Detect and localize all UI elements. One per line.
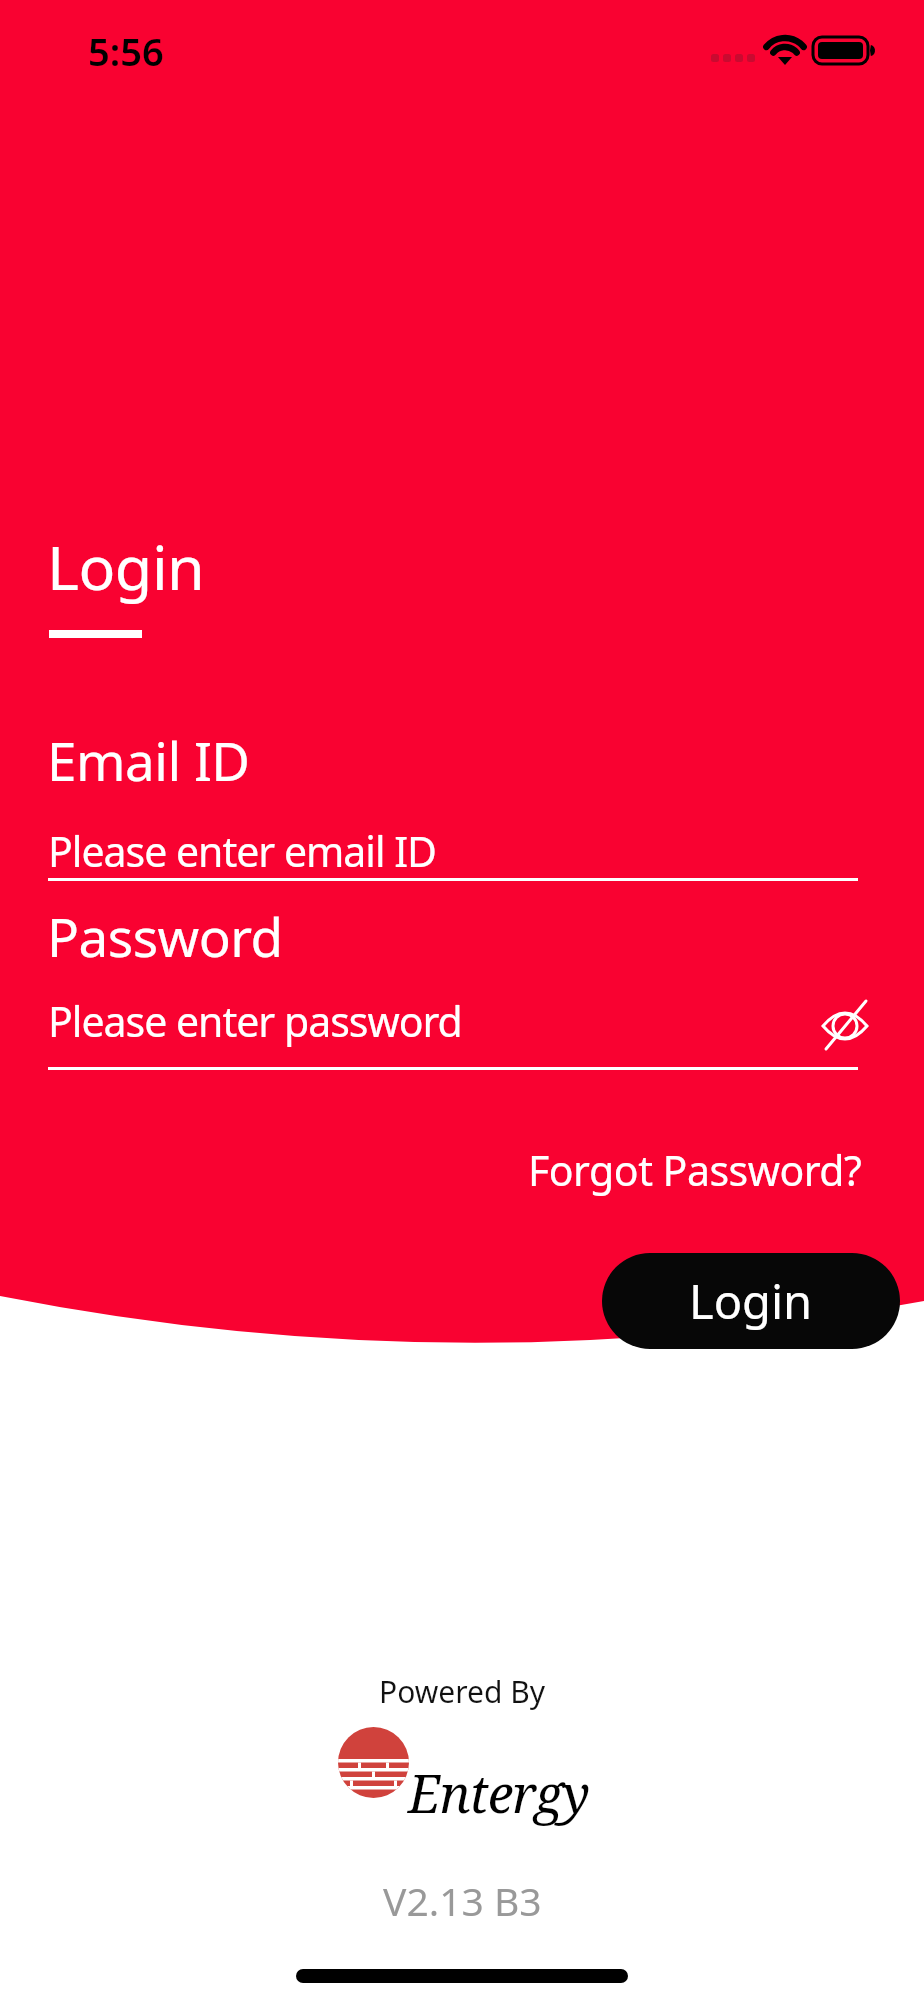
button[interactable]: Please enter password — [46, 990, 806, 1067]
staticText: Please enter email ID — [48, 823, 437, 879]
staticText: V2.13 B3 — [383, 1874, 542, 1927]
staticText: Entergy — [408, 1757, 589, 1828]
staticText: 5:56 — [88, 25, 164, 77]
button[interactable] — [814, 998, 876, 1056]
button[interactable]: Login — [602, 1253, 900, 1349]
staticText: Login — [47, 525, 205, 608]
button[interactable]: Please enter email ID — [46, 820, 858, 878]
staticText: Please enter password — [48, 993, 462, 1049]
staticText: Password — [47, 900, 283, 972]
button[interactable]: Forgot Password? — [528, 1142, 862, 1198]
staticText: Forgot Password? — [528, 1142, 862, 1198]
staticText: Login — [689, 1269, 813, 1333]
staticText: Powered By — [379, 1671, 545, 1712]
staticText: Email ID — [47, 724, 250, 796]
